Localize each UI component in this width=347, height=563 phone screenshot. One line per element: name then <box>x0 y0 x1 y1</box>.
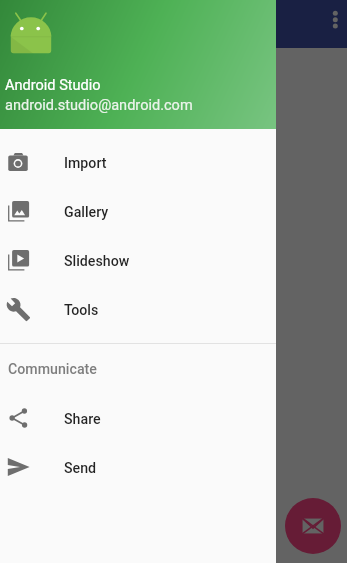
button[interactable]: Share <box>0 393 276 442</box>
staticText: Send <box>64 460 97 477</box>
button[interactable]: More options <box>323 4 347 36</box>
staticText: Android Studio <box>5 77 101 94</box>
staticText: Slideshow <box>64 253 130 270</box>
button[interactable]: Gallery <box>0 186 276 235</box>
button[interactable]: Android Studio <box>0 0 276 129</box>
staticText: android.studio@android.com <box>5 97 193 114</box>
staticText: Gallery <box>64 204 109 221</box>
button[interactable]: Slideshow <box>0 235 276 284</box>
button[interactable]: Import <box>0 137 276 186</box>
staticText: Communicate <box>8 361 97 378</box>
button[interactable]: Tools <box>0 284 276 333</box>
staticText: Tools <box>64 302 99 319</box>
button[interactable]: Compose email <box>285 498 341 554</box>
staticText: Share <box>64 411 101 428</box>
staticText: Import <box>64 155 107 172</box>
button[interactable]: Send <box>0 442 276 491</box>
